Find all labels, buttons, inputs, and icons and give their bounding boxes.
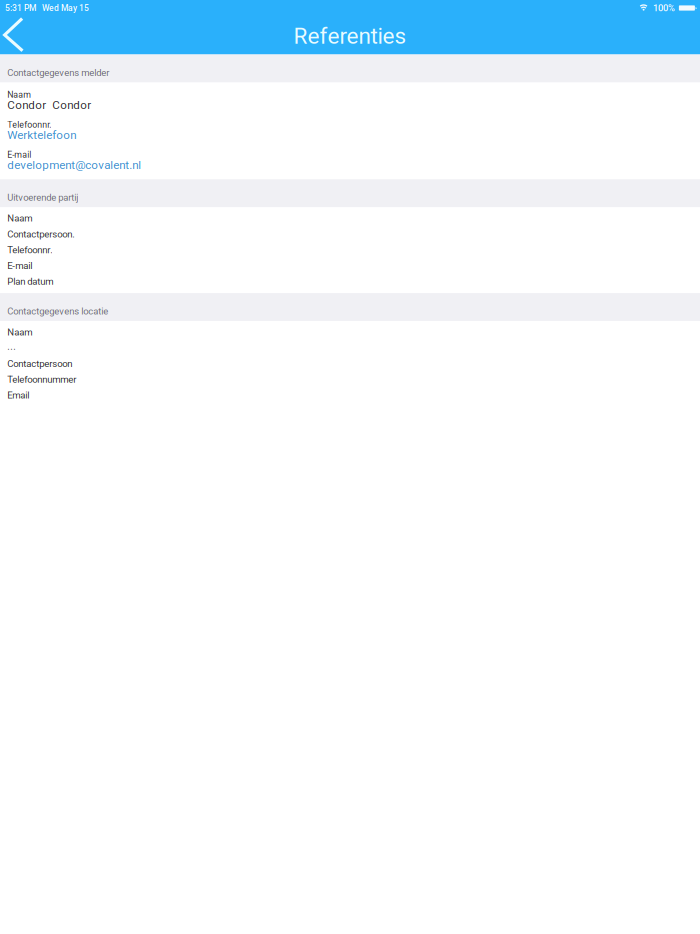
staticText: Plan datum [7, 276, 53, 287]
staticText: Naam [7, 89, 31, 100]
staticText: Uitvoerende partij [7, 192, 78, 203]
staticText: Werktelefoon [7, 128, 76, 142]
staticText: Naam [7, 326, 32, 338]
button[interactable]: Naam [0, 210, 700, 226]
staticText: E-mail [7, 149, 31, 160]
staticText: ... [7, 341, 16, 352]
staticText: Contactpersoon [7, 358, 72, 369]
staticText: 100% [649, 2, 679, 13]
staticText: 5:31 PM Wed May 15 [5, 3, 89, 13]
staticText: development@covalent.nl [7, 158, 141, 172]
button[interactable]: E-mail [0, 258, 700, 274]
staticText: E-mail [7, 260, 32, 271]
button[interactable]: Back [0, 17, 34, 55]
staticText: Naam [7, 213, 32, 224]
button[interactable]: Contactpersoon. [0, 226, 700, 242]
button[interactable]: Email [0, 387, 700, 403]
staticText: Telefoonnr. [7, 119, 51, 130]
button[interactable]: Plan datum [0, 274, 700, 289]
button[interactable]: Naam [0, 324, 700, 340]
button[interactable]: Naam [0, 90, 700, 120]
staticText: Telefoonnr. [7, 244, 53, 256]
staticText: Contactgegevens locatie [7, 306, 108, 317]
button[interactable]: E-mail [0, 150, 700, 180]
button[interactable]: Contactpersoon [0, 356, 700, 372]
button[interactable]: Telefoonnr. [0, 120, 700, 150]
staticText: Contactgegevens melder [7, 67, 109, 78]
staticText: Referenties [293, 23, 406, 49]
staticText: Contactpersoon. [7, 228, 75, 240]
staticText: Email [7, 390, 29, 401]
button[interactable]: Telefoonnummer [0, 372, 700, 387]
staticText: Telefoonnummer [7, 374, 76, 385]
button[interactable]: Telefoonnr. [0, 242, 700, 258]
staticText: Condor Condor [7, 98, 91, 112]
